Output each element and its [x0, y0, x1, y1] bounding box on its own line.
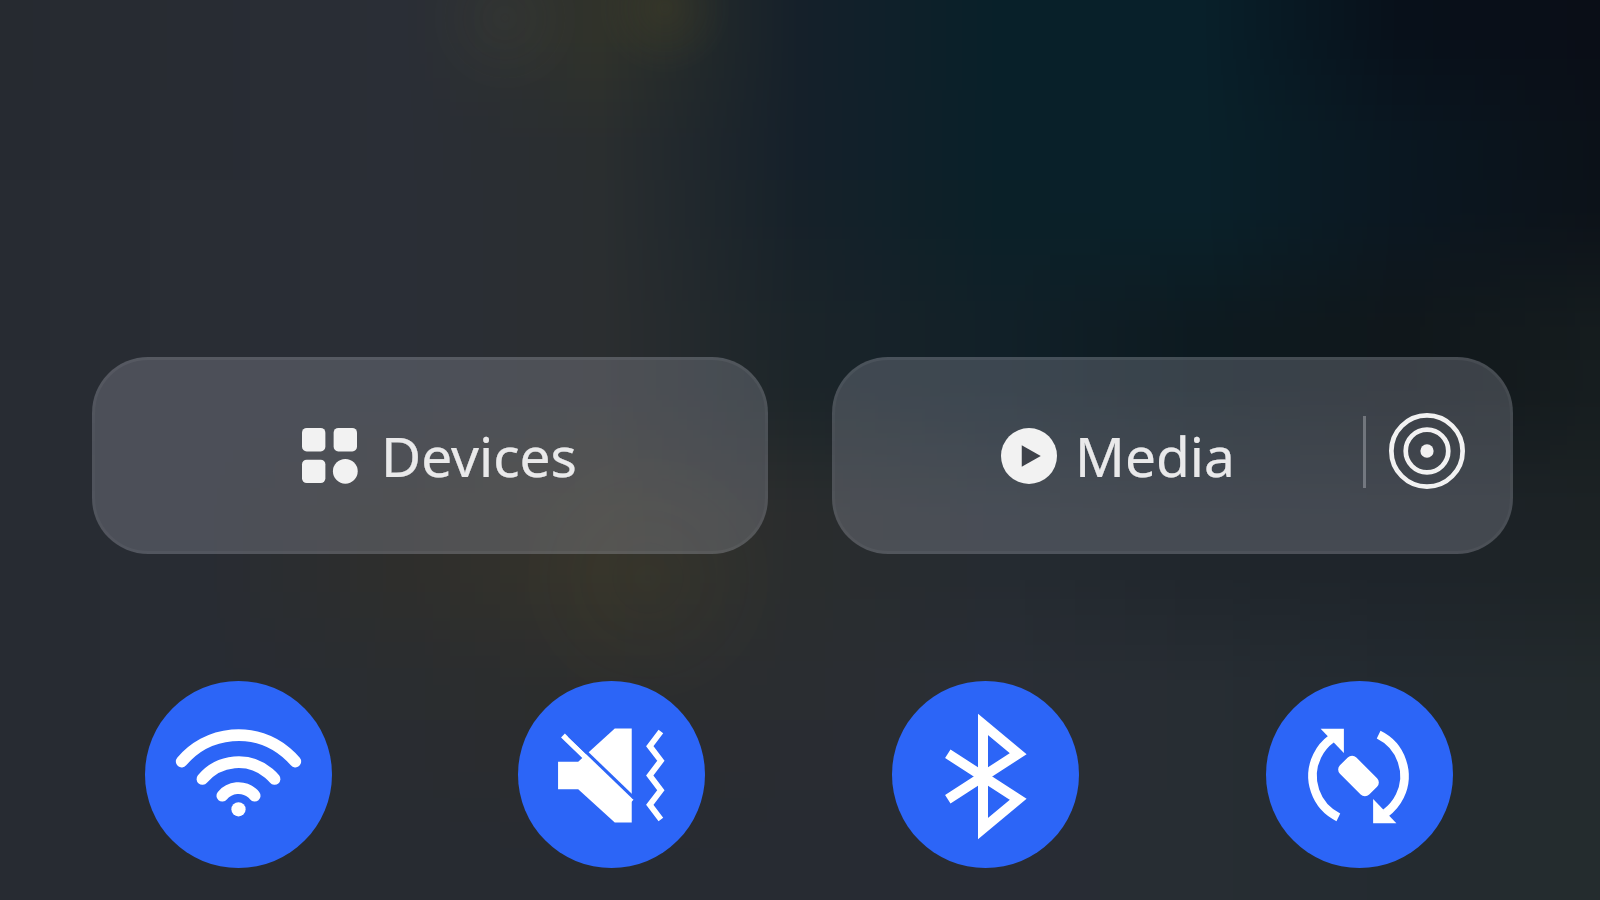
button[interactable]: Output switcher: [1346, 357, 1513, 554]
staticText: Devices: [381, 418, 577, 493]
button[interactable]: Media: [832, 357, 1346, 554]
button[interactable]: Devices: [92, 357, 768, 554]
button[interactable]: Internet: [145, 681, 332, 868]
button[interactable]: Bluetooth: [892, 681, 1079, 868]
staticText: Media: [1075, 418, 1235, 493]
button[interactable]: Auto-rotate: [1266, 681, 1453, 868]
button[interactable]: Ring vibrate: [518, 681, 705, 868]
